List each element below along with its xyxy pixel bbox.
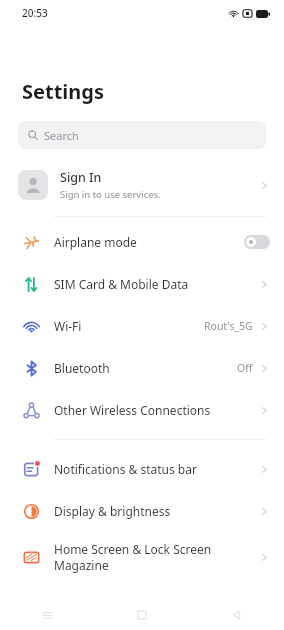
staticText: Notifications & status bar — [54, 461, 251, 477]
staticText: Settings — [22, 78, 104, 105]
button[interactable]: Display & brightness — [0, 490, 284, 532]
staticText: 20:53 — [22, 6, 48, 20]
button[interactable]: Other Wireless Connections — [0, 389, 284, 431]
button[interactable]: Airplane mode — [0, 221, 284, 263]
staticText: Search — [44, 128, 79, 143]
staticText: Bluetooth — [54, 360, 229, 376]
button[interactable]: SIM Card & Mobile Data — [0, 263, 284, 305]
staticText: Off — [237, 361, 253, 375]
button[interactable]: Bluetooth — [0, 347, 284, 389]
staticText: Home Screen & Lock Screen Magazine — [54, 541, 251, 573]
button[interactable]: Airplane mode toggle — [244, 235, 270, 249]
staticText: Rout's_5G — [204, 319, 253, 333]
button[interactable]: Sign In — [0, 162, 284, 208]
staticText: SIM Card & Mobile Data — [54, 276, 251, 292]
staticText: Wi-Fi — [54, 318, 196, 334]
staticText: Display & brightness — [54, 503, 251, 519]
staticText: Other Wireless Connections — [54, 402, 251, 418]
button[interactable]: Search — [18, 121, 266, 149]
button[interactable]: Home Screen & Lock Screen Magazine — [0, 532, 284, 582]
button[interactable]: Notifications & status bar — [0, 448, 284, 490]
staticText: Airplane mode — [54, 234, 236, 250]
staticText: Sign in to use services. — [60, 188, 161, 201]
button[interactable]: Wi-Fi — [0, 305, 284, 347]
staticText: Sign In — [60, 169, 102, 186]
